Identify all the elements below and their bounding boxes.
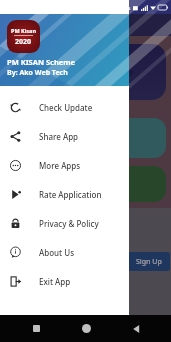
staticText: About Us [39, 247, 75, 258]
button[interactable]: Privacy and Policy [0, 209, 129, 238]
other: Share App [10, 131, 21, 142]
button[interactable]: Home [61, 315, 111, 342]
button[interactable]: Sign Up [128, 252, 170, 271]
other: More Apps [10, 160, 21, 171]
button[interactable]: More Apps [0, 151, 129, 180]
staticText: PM Kisan [11, 27, 36, 34]
other: About Us [10, 247, 21, 258]
button[interactable]: Rate Application [0, 180, 129, 209]
staticText: Share App [39, 131, 79, 142]
other: Check Update [10, 102, 21, 113]
staticText: PM KISAN Scheme [7, 57, 76, 67]
button[interactable]: Recents [11, 315, 61, 342]
staticText: Rate Application [39, 189, 102, 200]
staticText: 2020 [15, 37, 32, 47]
staticText: By: Ako Web Tech [7, 68, 68, 78]
staticText: 0.3KB/s [111, 4, 131, 11]
staticText: Check Update [39, 102, 93, 113]
staticText: Sign Up [136, 257, 162, 267]
button[interactable]: Back [111, 315, 161, 342]
staticText: Privacy & Policy [39, 218, 99, 229]
button[interactable]: About Us [0, 238, 129, 267]
staticText: Exit App [39, 276, 71, 287]
button[interactable]: Exit App [0, 267, 129, 296]
button[interactable]: Check Update [0, 93, 129, 122]
staticText: More Apps [39, 160, 81, 171]
staticText: Wait For [100, 67, 134, 78]
other: Rate Application [10, 189, 21, 200]
button[interactable]: Share App [0, 122, 129, 151]
other: Privacy and Policy [10, 218, 21, 229]
other: Exit App [10, 276, 21, 287]
staticText: er... [98, 52, 111, 62]
